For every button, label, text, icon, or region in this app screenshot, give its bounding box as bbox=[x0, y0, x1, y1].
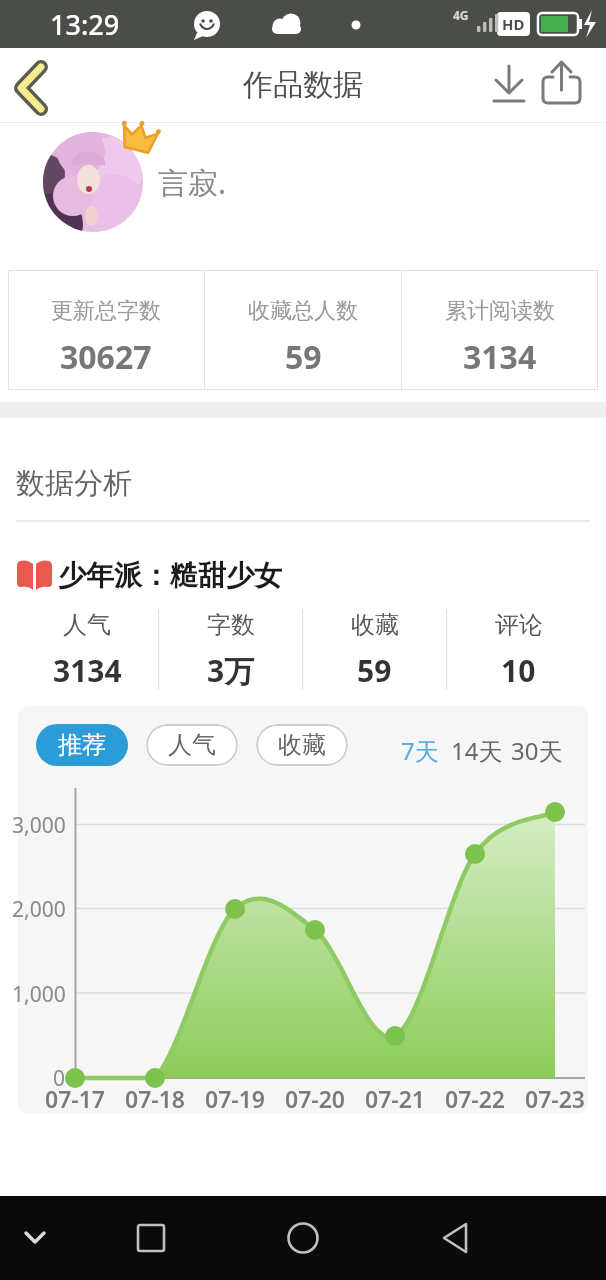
button[interactable] bbox=[43, 132, 143, 232]
button[interactable]: 收藏总人数 bbox=[205, 286, 401, 390]
button[interactable] bbox=[5, 1208, 65, 1268]
staticText: 4G bbox=[453, 7, 469, 23]
staticText: 更新总字数 bbox=[51, 297, 161, 325]
staticText: 数据分析 bbox=[16, 465, 132, 502]
button[interactable] bbox=[8, 56, 68, 116]
button[interactable]: 7天 bbox=[396, 734, 444, 766]
staticText: 3,000 bbox=[12, 811, 66, 837]
staticText: 字数 bbox=[207, 610, 255, 640]
button[interactable] bbox=[273, 1208, 333, 1268]
staticText: 少年派：糙甜少女 bbox=[58, 558, 282, 593]
staticText: 推荐 bbox=[58, 730, 106, 760]
button[interactable]: 14天 bbox=[448, 734, 506, 766]
staticText: 10 bbox=[501, 650, 536, 691]
staticText: 收藏 bbox=[351, 610, 399, 640]
button[interactable]: 收藏 bbox=[256, 724, 348, 766]
staticText: 07-20 bbox=[285, 1083, 345, 1111]
button[interactable]: 30天 bbox=[508, 734, 566, 766]
staticText: 14天 bbox=[451, 734, 503, 766]
staticText: 30627 bbox=[60, 335, 152, 379]
button[interactable]: 累计阅读数 bbox=[402, 286, 598, 390]
staticText: 2,000 bbox=[12, 895, 66, 921]
staticText: 3134 bbox=[463, 335, 537, 379]
button[interactable]: 推荐 bbox=[36, 724, 128, 766]
staticText: 言寂. bbox=[158, 162, 227, 203]
staticText: 30天 bbox=[511, 734, 563, 766]
button[interactable]: 更新总字数 bbox=[8, 286, 204, 390]
staticText: 收藏 bbox=[278, 730, 326, 760]
staticText: HD bbox=[502, 14, 525, 34]
staticText: 1,000 bbox=[12, 980, 66, 1006]
staticText: 07-21 bbox=[365, 1083, 425, 1111]
staticText: 3134 bbox=[53, 650, 122, 691]
button[interactable] bbox=[534, 58, 590, 112]
staticText: 07-22 bbox=[445, 1083, 505, 1111]
staticText: 评论 bbox=[495, 610, 543, 640]
staticText: 3万 bbox=[207, 650, 255, 691]
button[interactable]: 人气 bbox=[146, 724, 238, 766]
staticText: 人气 bbox=[63, 610, 111, 640]
staticText: 人气 bbox=[168, 730, 216, 760]
button[interactable] bbox=[121, 1208, 181, 1268]
staticText: 59 bbox=[357, 650, 392, 691]
button[interactable] bbox=[482, 58, 536, 112]
staticText: 59 bbox=[285, 335, 322, 379]
staticText: 累计阅读数 bbox=[445, 297, 555, 325]
staticText: 07-18 bbox=[125, 1083, 185, 1111]
staticText: 07-19 bbox=[205, 1083, 265, 1111]
staticText: 作品数据 bbox=[243, 66, 363, 104]
button[interactable] bbox=[425, 1208, 485, 1268]
staticText: 07-23 bbox=[525, 1083, 585, 1111]
staticText: 7天 bbox=[401, 734, 439, 766]
staticText: 收藏总人数 bbox=[248, 297, 358, 325]
staticText: 13:29 bbox=[50, 6, 120, 43]
staticText: 0 bbox=[53, 1064, 66, 1090]
staticText: 07-17 bbox=[45, 1083, 105, 1111]
